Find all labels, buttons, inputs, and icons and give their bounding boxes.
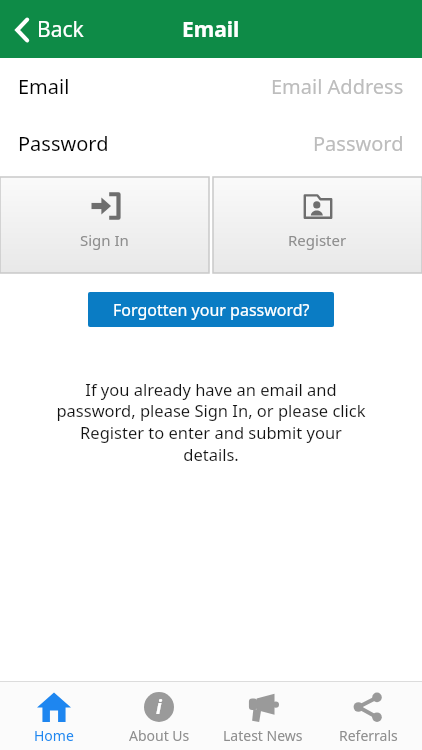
staticText: Password	[18, 130, 109, 157]
staticText: Latest News	[223, 726, 303, 745]
staticText: If you already have an email and passwor…	[56, 378, 366, 466]
staticText: Sign In	[80, 230, 129, 250]
staticText: Email Address	[271, 73, 404, 100]
button[interactable]: About Us	[109, 681, 209, 750]
button[interactable]: Home	[4, 681, 104, 750]
staticText: Password	[313, 130, 404, 157]
button[interactable]: Password	[0, 115, 422, 172]
staticText: Register	[288, 230, 347, 250]
button[interactable]: Back	[10, 9, 88, 50]
button[interactable]: Forgotten your password?	[88, 292, 334, 327]
staticText: Referrals	[339, 726, 398, 745]
button[interactable]: Email	[0, 58, 422, 115]
button[interactable]: Latest News	[213, 681, 313, 750]
button[interactable]: Register	[213, 177, 422, 273]
button[interactable]: Referrals	[318, 681, 418, 750]
staticText: Home	[34, 726, 74, 745]
staticText: Back	[37, 15, 84, 44]
staticText: About Us	[129, 726, 190, 745]
staticText: Email	[182, 15, 240, 44]
staticText: Forgotten your password?	[113, 299, 310, 321]
staticText: i	[156, 694, 162, 720]
button[interactable]: Sign In	[0, 177, 209, 273]
staticText: Email	[18, 73, 70, 100]
